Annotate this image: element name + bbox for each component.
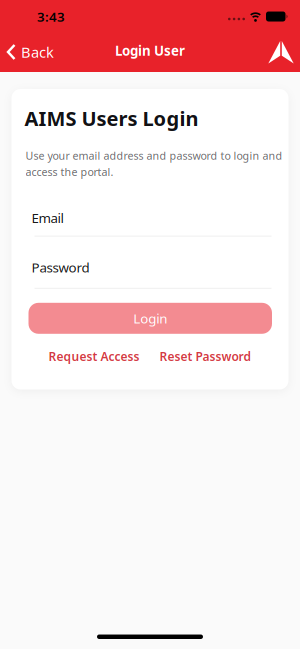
staticText: Reset Password [159,348,251,364]
staticText: access the portal. [25,165,113,179]
button[interactable] [268,40,300,63]
staticText: AIMS Users Login [24,105,198,132]
staticText: Back [21,42,54,62]
button[interactable]: Email [31,209,271,237]
button[interactable]: Back [0,42,54,62]
staticText: Use your email address and password to l… [25,149,282,163]
staticText: Email [31,209,63,227]
staticText: Request Access [48,348,139,364]
button[interactable]: Reset Password [159,348,251,364]
staticText: Login [133,309,167,327]
button[interactable]: Login [28,303,272,334]
button[interactable]: Request Access [48,348,139,364]
staticText: Password [31,259,89,276]
staticText: Login User [115,42,185,59]
button[interactable]: Password [31,259,271,289]
staticText: 3:43 [37,8,65,25]
